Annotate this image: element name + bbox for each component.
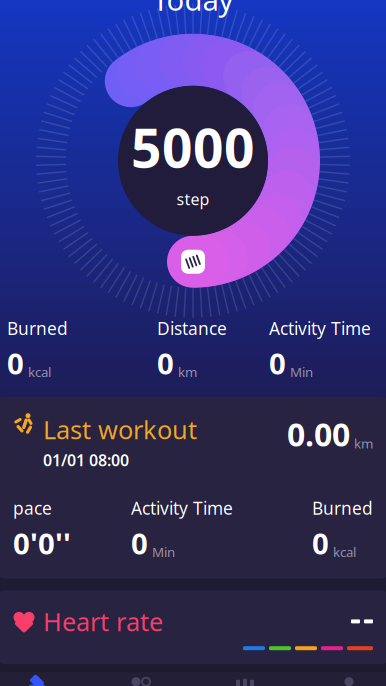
staticText: Heart rate — [43, 605, 163, 638]
staticText: 0 — [131, 524, 148, 563]
staticText: Today — [152, 0, 233, 19]
staticText: step — [176, 188, 209, 210]
staticText: 5000 — [131, 112, 255, 182]
staticText: 0 — [7, 344, 24, 383]
staticText: Activity Time — [131, 497, 233, 520]
staticText: km — [178, 363, 197, 381]
staticText: pace — [13, 497, 52, 520]
staticText: 0 — [269, 344, 286, 383]
staticText: Min — [152, 543, 175, 561]
staticText: 0.00 — [287, 413, 350, 455]
staticText: Burned — [7, 317, 68, 340]
staticText: Burned — [312, 497, 373, 520]
button[interactable]: DEVICE — [193, 670, 297, 686]
staticText: Distance — [157, 317, 227, 340]
staticText: km — [354, 434, 373, 452]
staticText: kcal — [333, 543, 356, 561]
staticText: 0 — [312, 524, 329, 563]
staticText: kcal — [28, 363, 51, 381]
staticText: 0'0'' — [13, 524, 71, 563]
staticText: Activity Time — [269, 317, 371, 340]
staticText: Last workout — [43, 413, 197, 446]
staticText: 0 — [157, 344, 174, 383]
button[interactable]: Last workout — [0, 397, 386, 579]
staticText: 01/01 08:00 — [43, 449, 129, 471]
button[interactable]: Heart rate — [0, 591, 386, 664]
button[interactable]: HOME — [0, 670, 89, 686]
staticText: Min — [290, 363, 313, 381]
button[interactable]: USER — [297, 670, 386, 686]
button[interactable]: GPS — [89, 670, 193, 686]
